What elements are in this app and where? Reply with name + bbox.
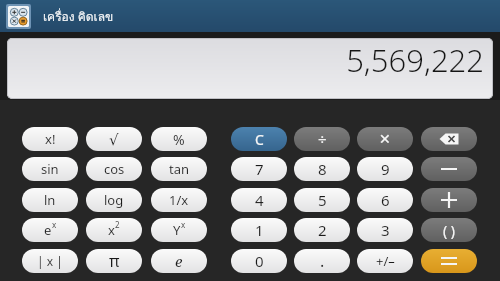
button[interactable]: 3 (357, 218, 413, 242)
button[interactable]: Display (7, 38, 493, 99)
staticText: 6 (381, 190, 390, 210)
staticText: 4 (255, 190, 264, 210)
staticText: 5,569,222 (346, 39, 484, 81)
button[interactable]: Minus (421, 157, 477, 181)
staticText: 3 (381, 220, 390, 240)
button[interactable]: C (231, 127, 287, 151)
staticText: 0 (255, 251, 264, 271)
staticText: x (108, 221, 115, 239)
staticText: เครื่อง คิดเลข (43, 7, 114, 26)
button[interactable]: Equals (421, 249, 477, 273)
staticText: ÷ (318, 129, 327, 149)
staticText: % (173, 130, 185, 149)
staticText: ( ) (443, 221, 456, 240)
button[interactable]: 2 (294, 218, 350, 242)
staticText: ln (44, 191, 56, 209)
button[interactable]: 7 (231, 157, 287, 181)
staticText: e (44, 221, 52, 239)
button[interactable]: 0 (231, 249, 287, 273)
button[interactable]: Plus (421, 188, 477, 212)
button[interactable]: ( ) (421, 218, 477, 242)
staticText: C (255, 130, 264, 149)
staticText: cos (104, 160, 125, 178)
staticText: x (181, 219, 186, 230)
staticText: 2 (318, 220, 327, 240)
button[interactable]: e (22, 218, 78, 242)
button[interactable]: tan (151, 157, 207, 181)
button[interactable]: Backspace (421, 127, 477, 151)
staticText: ✕ (379, 131, 391, 147)
button[interactable]: log (86, 188, 142, 212)
button[interactable]: % (151, 127, 207, 151)
staticText: sin (41, 160, 59, 178)
staticText: . (320, 250, 325, 272)
button[interactable]: | x | (22, 249, 78, 273)
button[interactable]: 4 (231, 188, 287, 212)
button[interactable]: 1/x (151, 188, 207, 212)
staticText: +/– (376, 252, 395, 270)
staticText: log (104, 191, 124, 209)
staticText: | x | (37, 253, 63, 269)
button[interactable]: π (86, 249, 142, 273)
button[interactable]: +/– (357, 249, 413, 273)
staticText: 5 (318, 190, 327, 210)
staticText: 1 (255, 220, 264, 240)
button[interactable]: e (151, 249, 207, 273)
button[interactable]: ln (22, 188, 78, 212)
button[interactable]: 6 (357, 188, 413, 212)
staticText: tan (169, 160, 190, 178)
button[interactable]: 5 (294, 188, 350, 212)
staticText: 2 (115, 219, 120, 230)
button[interactable]: x! (22, 127, 78, 151)
staticText: 9 (381, 159, 390, 179)
staticText: √ (109, 131, 119, 148)
button[interactable]: 9 (357, 157, 413, 181)
button[interactable]: cos (86, 157, 142, 181)
button[interactable]: . (294, 249, 350, 273)
staticText: e (175, 251, 183, 271)
button[interactable]: sin (22, 157, 78, 181)
staticText: 8 (318, 159, 327, 179)
button[interactable]: 1 (231, 218, 287, 242)
staticText: x (52, 219, 57, 230)
button[interactable]: √ (86, 127, 142, 151)
staticText: 7 (255, 159, 264, 179)
button[interactable]: 8 (294, 157, 350, 181)
staticText: x! (45, 130, 56, 148)
staticText: π (109, 250, 120, 272)
button[interactable]: Y (151, 218, 207, 242)
button[interactable]: x (86, 218, 142, 242)
button[interactable]: ✕ (357, 127, 413, 151)
staticText: Y (173, 221, 181, 239)
button[interactable]: ÷ (294, 127, 350, 151)
button[interactable]: Calculator icon (6, 4, 31, 29)
staticText: 1/x (169, 191, 189, 209)
